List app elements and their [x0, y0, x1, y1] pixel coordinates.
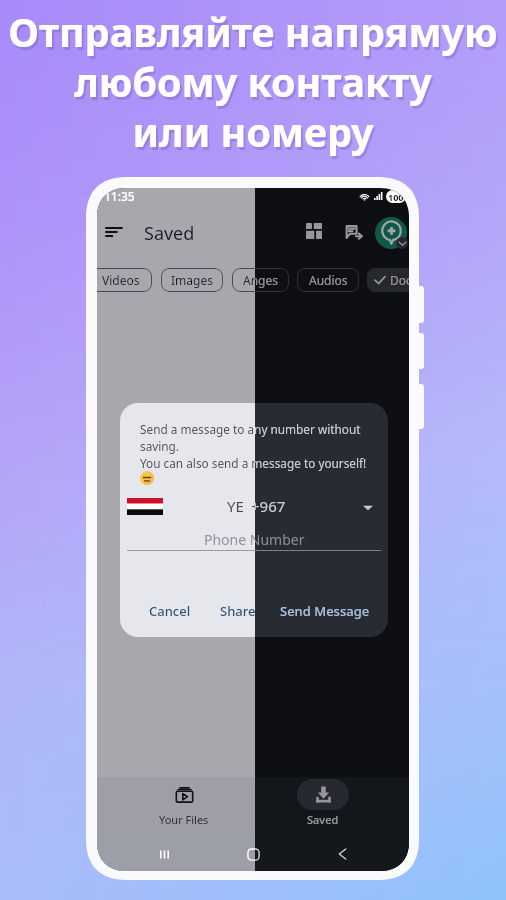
- button[interactable]: Your Files: [114, 777, 253, 829]
- button[interactable]: Home: [209, 837, 298, 871]
- staticText: +967: [251, 496, 286, 516]
- button[interactable]: Select country code: [360, 500, 376, 516]
- button[interactable]: Docs: [367, 268, 409, 292]
- staticText: Your Files: [159, 812, 209, 827]
- staticText: Images: [171, 272, 213, 288]
- button[interactable]: Docs: [367, 268, 409, 292]
- staticText: Cancel: [149, 602, 191, 620]
- button[interactable]: New chat: [375, 217, 407, 249]
- staticText: Saved: [144, 221, 195, 246]
- button[interactable]: Back: [298, 837, 387, 871]
- button[interactable]: Sort: [97, 215, 131, 249]
- button[interactable]: New chat: [375, 217, 407, 249]
- staticText: Send Message: [280, 602, 370, 620]
- staticText: Anges: [243, 272, 278, 288]
- button[interactable]: Recents: [119, 837, 209, 871]
- button[interactable]: Images: [161, 268, 223, 292]
- button[interactable]: Saved: [253, 777, 392, 829]
- staticText: Phone Number: [204, 530, 305, 549]
- button[interactable]: Share: [212, 598, 264, 624]
- staticText: Send a message to any number without sav…: [140, 421, 367, 471]
- button[interactable]: Your Files: [114, 777, 253, 829]
- staticText: 11:35: [104, 188, 135, 204]
- button[interactable]: Audios: [297, 268, 359, 292]
- staticText: +967: [251, 496, 286, 516]
- staticText: Saved: [144, 221, 195, 246]
- button[interactable]: Grid view: [297, 214, 331, 248]
- staticText: Audios: [309, 272, 348, 288]
- staticText: Anges: [243, 272, 278, 288]
- button[interactable]: Anges: [232, 268, 289, 292]
- staticText: YE: [227, 496, 244, 516]
- staticText: Send Message: [280, 602, 370, 620]
- staticText: Отправляйте напрямую любому контакту или…: [8, 5, 498, 158]
- staticText: Send a message to any number without sav…: [140, 421, 367, 471]
- button[interactable]: Videos: [97, 268, 152, 292]
- button[interactable]: Images: [161, 268, 223, 292]
- staticText: Your Files: [159, 812, 209, 827]
- staticText: Docs: [390, 272, 409, 288]
- button[interactable]: Back: [298, 837, 387, 871]
- button[interactable]: Send Message: [272, 598, 378, 624]
- staticText: Docs: [390, 272, 409, 288]
- button[interactable]: Grid view: [297, 214, 331, 248]
- button[interactable]: Saved: [253, 777, 392, 829]
- button[interactable]: Home: [209, 837, 298, 871]
- staticText: 100: [388, 191, 404, 203]
- staticText: Videos: [102, 272, 140, 288]
- staticText: 100: [388, 191, 404, 203]
- button[interactable]: Audios: [297, 268, 359, 292]
- staticText: Saved: [307, 812, 339, 827]
- button[interactable]: Forward message: [337, 215, 371, 249]
- staticText: Images: [171, 272, 213, 288]
- staticText: Saved: [307, 812, 339, 827]
- button[interactable]: Videos: [97, 268, 152, 292]
- staticText: Share: [220, 602, 256, 620]
- staticText: Share: [220, 602, 256, 620]
- button[interactable]: Cancel: [141, 598, 199, 624]
- staticText: Отправляйте напрямую любому контакту или…: [10, 8, 500, 161]
- button[interactable]: Select country code: [360, 500, 376, 516]
- staticText: Videos: [102, 272, 140, 288]
- staticText: Audios: [309, 272, 348, 288]
- button[interactable]: Recents: [119, 837, 209, 871]
- button[interactable]: Forward message: [337, 215, 371, 249]
- staticText: Phone Number: [204, 530, 305, 549]
- staticText: 11:35: [104, 188, 135, 204]
- button[interactable]: Anges: [232, 268, 289, 292]
- button[interactable]: Sort: [97, 215, 131, 249]
- staticText: Cancel: [149, 602, 191, 620]
- button[interactable]: Cancel: [141, 598, 199, 624]
- button[interactable]: Share: [212, 598, 264, 624]
- staticText: YE: [227, 496, 244, 516]
- button[interactable]: Send Message: [272, 598, 378, 624]
